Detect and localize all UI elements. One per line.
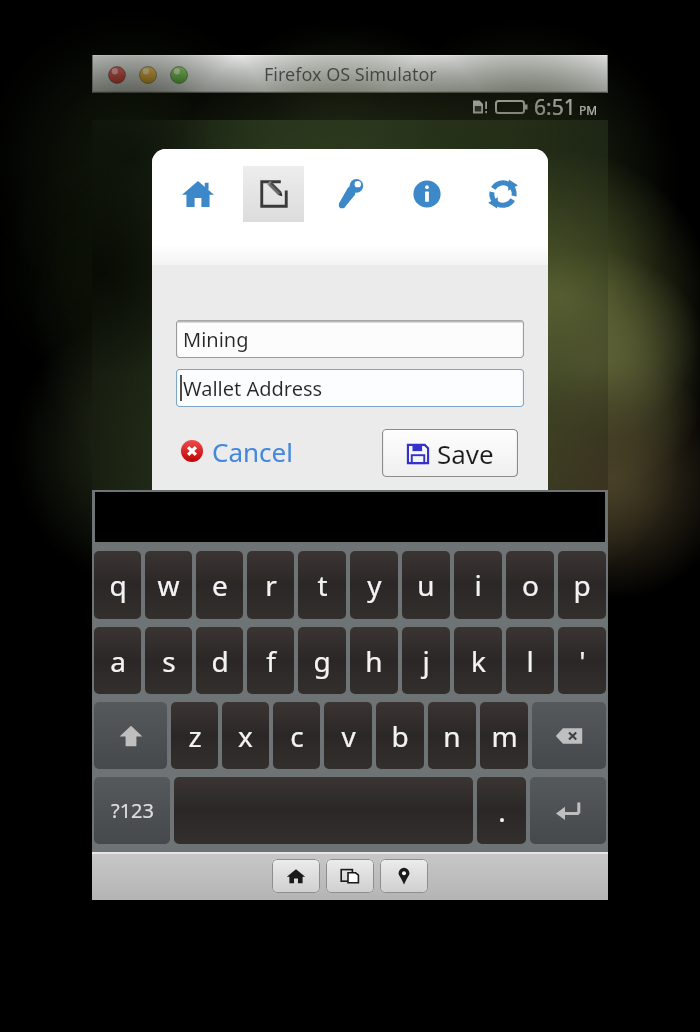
staticText: j xyxy=(422,642,430,680)
staticText: Wallet Address xyxy=(183,375,323,402)
button[interactable]: Enter xyxy=(530,777,606,844)
button[interactable]: Wallet Address xyxy=(176,369,524,407)
button[interactable]: z xyxy=(171,702,218,769)
staticText: e xyxy=(212,566,228,604)
button[interactable]: y xyxy=(350,551,398,619)
staticText: t xyxy=(317,566,328,604)
button[interactable]: Shift xyxy=(94,702,167,769)
button[interactable]: k xyxy=(454,627,502,694)
staticText: h xyxy=(365,642,383,680)
button[interactable]: g xyxy=(298,627,346,694)
staticText: s xyxy=(162,642,176,680)
staticText: ?123 xyxy=(111,797,154,824)
button[interactable]: p xyxy=(558,551,606,619)
button[interactable]: i xyxy=(454,551,502,619)
staticText: c xyxy=(290,717,304,755)
button[interactable]: w xyxy=(145,551,192,619)
staticText: d xyxy=(211,642,229,680)
button[interactable]: h xyxy=(350,627,398,694)
button[interactable]: Info xyxy=(396,166,457,222)
button[interactable]: Settings xyxy=(320,166,381,222)
staticText: g xyxy=(313,642,331,680)
button[interactable]: v xyxy=(324,702,372,769)
staticText: l xyxy=(526,642,534,680)
staticText: k xyxy=(471,642,486,680)
button[interactable]: l xyxy=(506,627,554,694)
button[interactable]: n xyxy=(428,702,476,769)
button[interactable]: x xyxy=(222,702,269,769)
button[interactable]: c xyxy=(273,702,320,769)
button[interactable]: m xyxy=(480,702,528,769)
staticText: a xyxy=(110,642,126,680)
button[interactable]: Save xyxy=(382,429,518,477)
button[interactable]: b xyxy=(376,702,424,769)
staticText: v xyxy=(341,717,356,755)
button[interactable]: ?123 xyxy=(94,777,170,844)
button[interactable]: u xyxy=(402,551,450,619)
staticText: n xyxy=(443,717,461,755)
staticText: ' xyxy=(579,642,586,680)
button[interactable]: Edit xyxy=(243,166,304,222)
staticText: q xyxy=(109,566,127,604)
staticText: x xyxy=(238,717,253,755)
button[interactable]: ' xyxy=(558,627,606,694)
button[interactable]: q xyxy=(94,551,141,619)
staticText: u xyxy=(417,566,435,604)
staticText: r xyxy=(265,566,277,604)
button[interactable]: s xyxy=(145,627,192,694)
staticText: f xyxy=(266,642,276,680)
staticText: p xyxy=(573,566,591,604)
button[interactable]: Refresh xyxy=(472,166,533,222)
staticText: b xyxy=(391,717,409,755)
staticText: PM xyxy=(579,102,598,118)
button[interactable]: Location xyxy=(380,859,428,893)
staticText: Save xyxy=(437,436,494,471)
button[interactable]: Backspace xyxy=(532,702,606,769)
button[interactable]: o xyxy=(506,551,554,619)
button[interactable]: f xyxy=(247,627,294,694)
staticText: Cancel xyxy=(212,434,293,469)
button[interactable]: Home xyxy=(272,859,320,893)
button[interactable]: j xyxy=(402,627,450,694)
staticText: m xyxy=(491,717,518,755)
staticText: w xyxy=(157,566,180,604)
button[interactable]: Space xyxy=(174,777,473,844)
button[interactable]: r xyxy=(247,551,294,619)
staticText: Mining xyxy=(183,326,249,353)
button[interactable]: Cancel xyxy=(180,429,293,473)
staticText: Firefox OS Simulator xyxy=(264,62,437,87)
button[interactable]: d xyxy=(196,627,243,694)
button[interactable]: Recent apps xyxy=(326,859,374,893)
button[interactable]: Mining xyxy=(176,320,524,358)
staticText: o xyxy=(522,566,539,604)
staticText: z xyxy=(188,717,202,755)
button[interactable]: . xyxy=(477,777,526,844)
staticText: i xyxy=(474,566,482,604)
staticText: 6:51 xyxy=(534,93,576,120)
button[interactable]: a xyxy=(94,627,141,694)
button[interactable]: e xyxy=(196,551,243,619)
button[interactable]: t xyxy=(298,551,346,619)
staticText: . xyxy=(498,792,506,830)
button[interactable]: Home xyxy=(167,166,228,222)
staticText: y xyxy=(367,566,382,604)
